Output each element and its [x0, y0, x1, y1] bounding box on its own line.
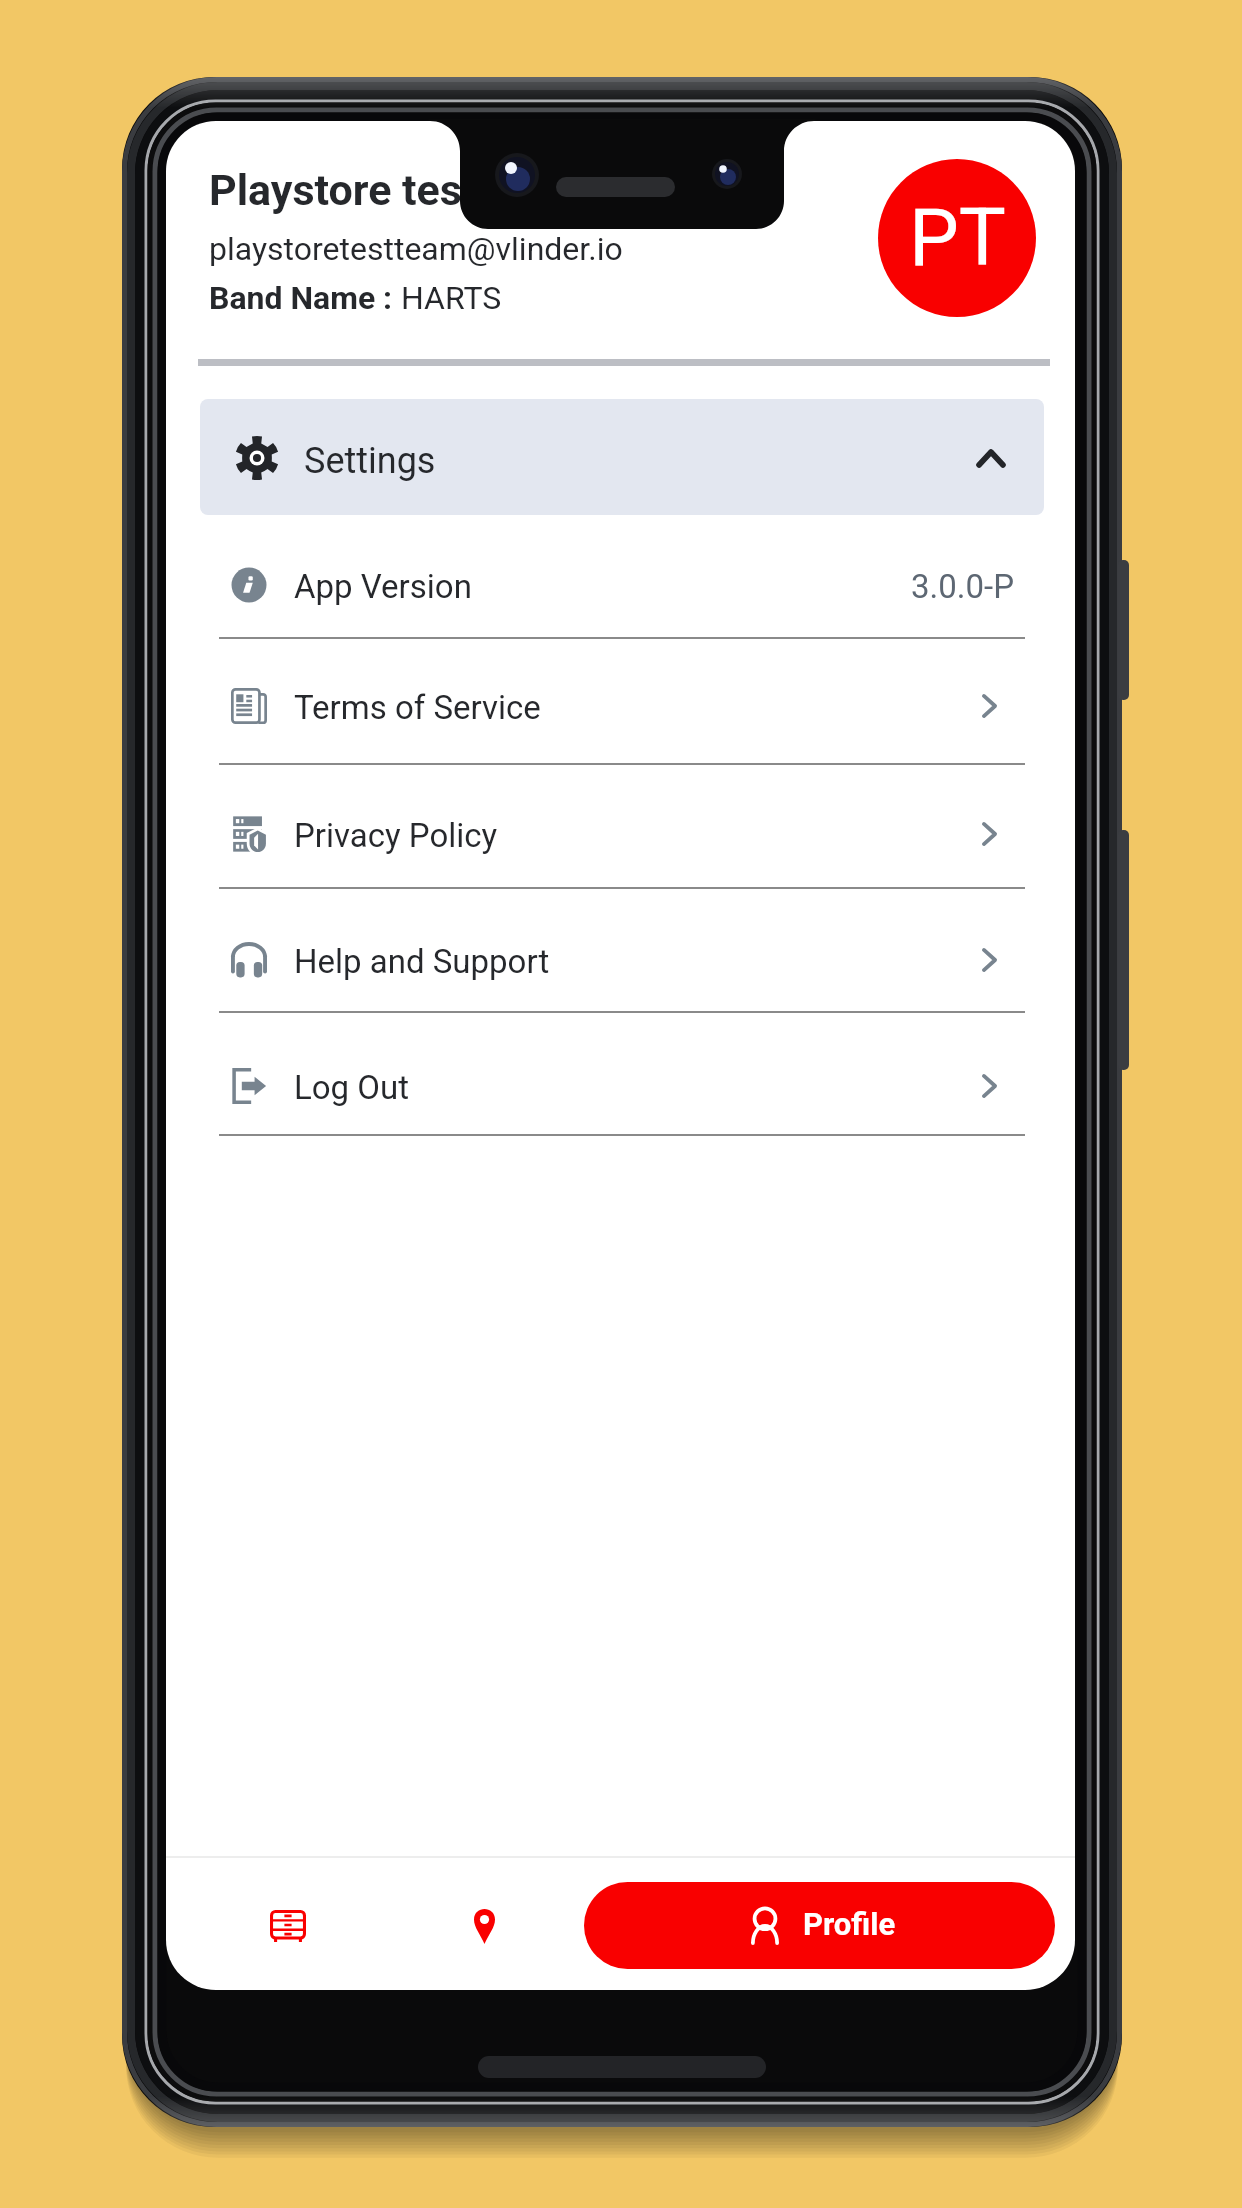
- staticText: App Version: [294, 567, 472, 606]
- staticText: Terms of Service: [294, 688, 541, 727]
- staticText: 3.0.0-P: [911, 567, 1014, 606]
- button[interactable]: Terms of Service: [166, 640, 1075, 764]
- button[interactable]: Settings: [200, 399, 1044, 515]
- staticText: Profile: [803, 1906, 896, 1942]
- button[interactable]: Profile: [584, 1882, 1055, 1969]
- staticText: Settings: [304, 440, 436, 482]
- staticText: PT: [909, 192, 1006, 285]
- staticText: Help and Support: [294, 942, 550, 981]
- staticText: HARTS: [393, 279, 502, 317]
- staticText: Playstore test: [209, 165, 477, 215]
- button[interactable]: Privacy Policy: [166, 764, 1075, 888]
- button[interactable]: Products: [258, 1898, 318, 1954]
- button[interactable]: Log Out: [166, 1011, 1075, 1135]
- staticText: Log Out: [294, 1068, 410, 1107]
- button[interactable]: App Version: [166, 514, 1075, 638]
- button[interactable]: Help and Support: [166, 888, 1075, 1012]
- staticText: playstoretestteam@vlinder.io: [209, 230, 623, 268]
- staticText: Band Name :: [209, 279, 393, 317]
- button[interactable]: Account avatar PT: [878, 159, 1036, 317]
- button[interactable]: Locations: [456, 1896, 512, 1956]
- staticText: Privacy Policy: [294, 816, 498, 855]
